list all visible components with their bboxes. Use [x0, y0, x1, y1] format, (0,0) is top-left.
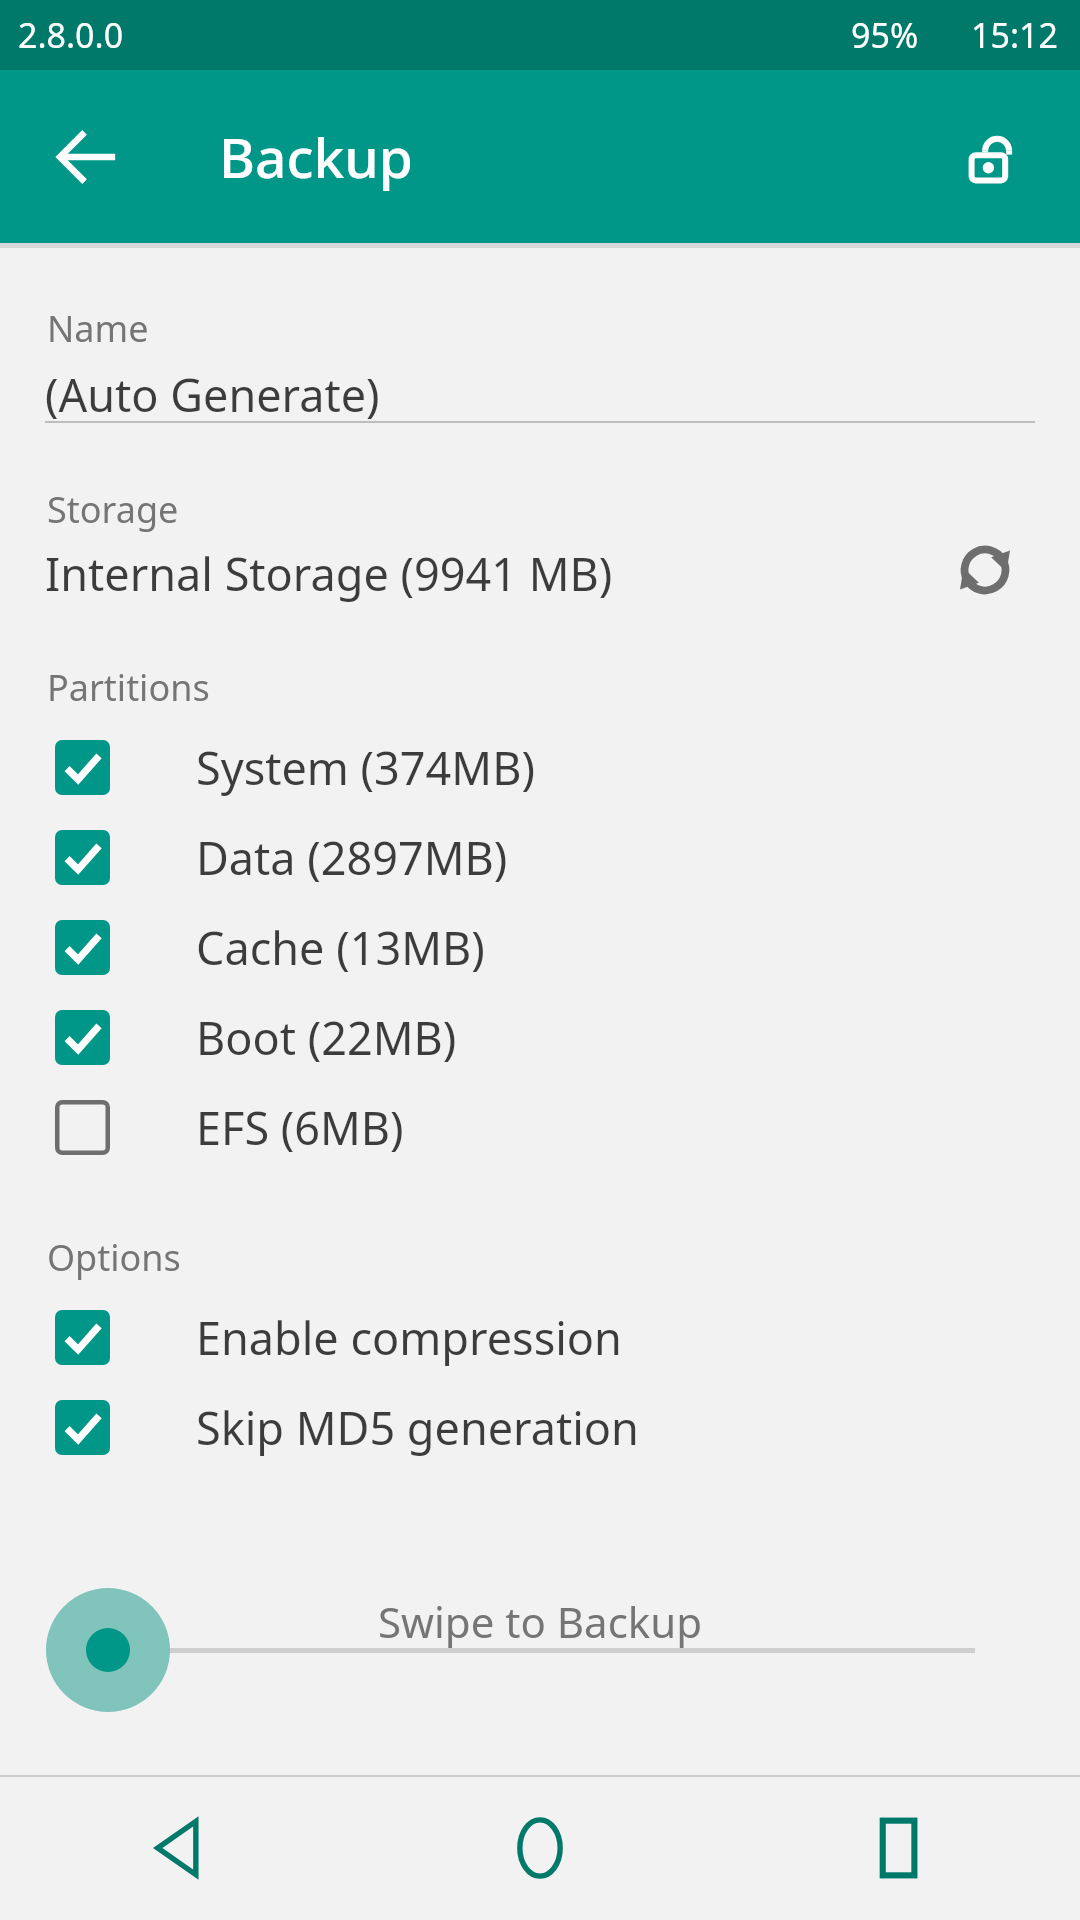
button[interactable]: Home: [360, 1775, 720, 1920]
staticText: System (374MB): [196, 737, 535, 798]
button[interactable]: Swipe to Backup: [46, 1588, 170, 1712]
button[interactable]: Back: [0, 1775, 360, 1920]
staticText: Skip MD5 generation: [196, 1397, 639, 1458]
button[interactable]: Recents: [720, 1775, 1080, 1920]
staticText: Storage: [47, 485, 179, 534]
button[interactable]: Refresh storage: [935, 520, 1035, 620]
staticText: (Auto Generate): [45, 364, 380, 425]
staticText: 15:12: [971, 12, 1058, 58]
staticText: Internal Storage (9941 MB): [45, 543, 613, 604]
staticText: 95%: [851, 12, 919, 58]
staticText: Swipe to Backup: [0, 1593, 1080, 1650]
button[interactable]: Cache (13MB): [30, 902, 1050, 992]
staticText: Options: [47, 1233, 181, 1282]
staticText: Backup: [219, 119, 413, 194]
staticText: EFS (6MB): [196, 1097, 404, 1158]
button[interactable]: EFS (6MB): [30, 1082, 1050, 1172]
button[interactable]: Enable compression: [30, 1292, 1050, 1382]
button[interactable]: Back: [36, 107, 136, 207]
button[interactable]: Boot (22MB): [30, 992, 1050, 1082]
staticText: Boot (22MB): [196, 1007, 457, 1068]
staticText: Data (2897MB): [196, 827, 508, 888]
staticText: 2.8.0.0: [18, 12, 124, 58]
staticText: Enable compression: [196, 1307, 622, 1368]
staticText: Name: [47, 304, 149, 353]
button[interactable]: Data (2897MB): [30, 812, 1050, 902]
staticText: Partitions: [47, 663, 210, 712]
staticText: Cache (13MB): [196, 917, 485, 978]
button[interactable]: System (374MB): [30, 722, 1050, 812]
button[interactable]: Skip MD5 generation: [30, 1382, 1050, 1472]
button[interactable]: Unlock: [945, 107, 1045, 207]
